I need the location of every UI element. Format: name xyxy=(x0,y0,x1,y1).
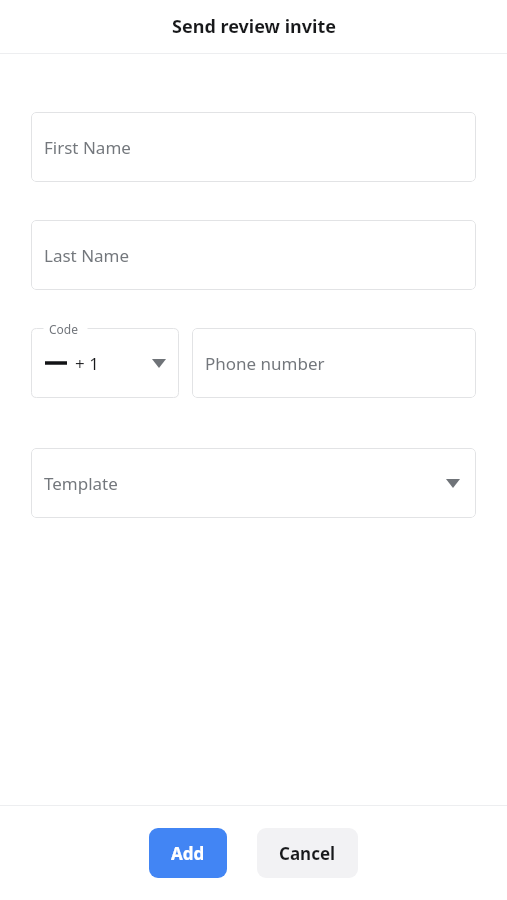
staticText: Template xyxy=(44,472,118,495)
button[interactable]: Phone number xyxy=(192,328,476,398)
staticText: Cancel xyxy=(279,842,336,865)
other: Select country code xyxy=(152,359,166,368)
button[interactable]: First Name xyxy=(31,112,476,182)
button[interactable]: + 1 xyxy=(31,328,179,398)
staticText: Add xyxy=(171,842,205,865)
staticText: First Name xyxy=(44,136,131,159)
staticText: Send review invite xyxy=(172,14,336,39)
button[interactable]: Cancel xyxy=(257,828,358,878)
button[interactable]: Add xyxy=(149,828,227,878)
staticText: Last Name xyxy=(44,244,130,267)
staticText: Code xyxy=(49,321,78,337)
button[interactable]: Last Name xyxy=(31,220,476,290)
staticText: Phone number xyxy=(205,352,325,375)
button[interactable]: Template xyxy=(31,448,476,518)
staticText: + 1 xyxy=(75,352,99,375)
other: Open template list xyxy=(446,479,460,488)
